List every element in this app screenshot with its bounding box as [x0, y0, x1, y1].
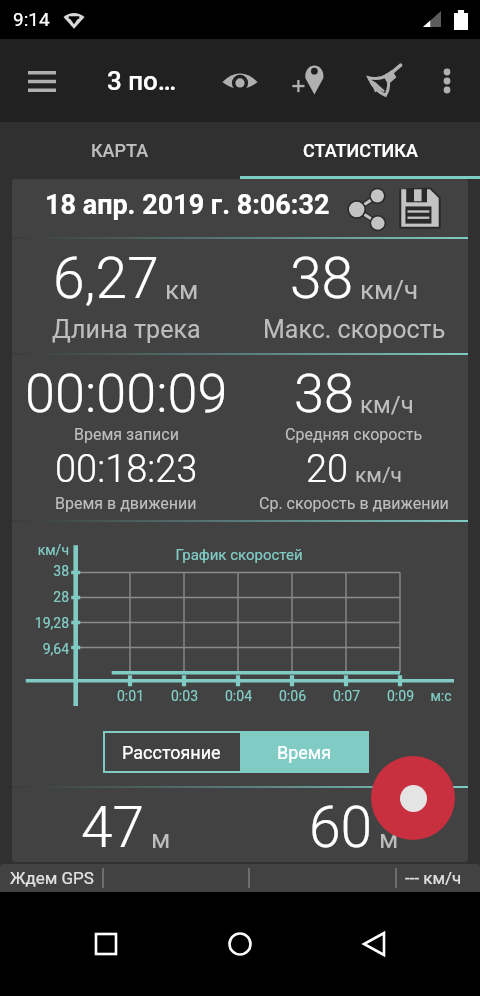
staticText: 9,64: [42, 641, 69, 657]
button[interactable]: Home: [212, 916, 268, 972]
staticText: 3 по…: [107, 66, 177, 96]
staticText: 60: [309, 794, 373, 861]
button[interactable]: Расстояние: [103, 731, 240, 773]
staticText: 18 апр. 2019 г. 8:06:32: [45, 189, 330, 221]
staticText: --- км/ч: [405, 868, 462, 888]
staticText: Время записи: [74, 425, 179, 444]
staticText: 0:04: [225, 688, 252, 704]
staticText: 47: [81, 794, 145, 861]
staticText: Средняя скорость: [285, 425, 423, 444]
staticText: 9:14: [13, 8, 50, 30]
staticText: 38: [290, 245, 354, 312]
button[interactable]: Show track: [212, 53, 268, 109]
staticText: Макс. скорость: [263, 315, 446, 344]
staticText: СТАТИСТИКА: [303, 140, 418, 161]
staticText: Длина трека: [52, 315, 201, 344]
staticText: км/ч: [37, 542, 69, 558]
button[interactable]: Start recording: [371, 756, 455, 840]
staticText: Время: [277, 742, 332, 763]
staticText: 20: [306, 447, 349, 492]
staticText: Ср. скорость в движении: [259, 494, 449, 513]
staticText: КАРТА: [91, 140, 149, 161]
button[interactable]: СТАТИСТИКА: [240, 122, 480, 179]
staticText: 0:01: [117, 688, 144, 704]
staticText: км/ч: [360, 391, 414, 419]
button[interactable]: КАРТА: [0, 122, 240, 179]
button[interactable]: Share: [343, 185, 391, 233]
staticText: 6,27: [53, 245, 159, 312]
button[interactable]: More options: [423, 57, 471, 105]
staticText: 0:03: [171, 688, 198, 704]
staticText: Расстояние: [122, 742, 221, 763]
staticText: Ждем GPS: [10, 868, 94, 888]
button[interactable]: Clear track: [355, 53, 411, 109]
staticText: км/ч: [360, 275, 419, 305]
staticText: 0:06: [279, 688, 306, 704]
staticText: м: [151, 824, 171, 854]
staticText: км: [165, 275, 199, 305]
button[interactable]: Back: [346, 916, 402, 972]
staticText: 0:09: [387, 688, 414, 704]
button[interactable]: Add marker: [283, 53, 339, 109]
button[interactable]: Recents: [78, 916, 134, 972]
staticText: 00:18:23: [55, 447, 198, 492]
staticText: м:с: [430, 688, 452, 704]
staticText: 19,28: [34, 615, 69, 631]
staticText: 28: [53, 589, 69, 605]
staticText: км/ч: [355, 463, 403, 488]
button[interactable]: Время: [240, 731, 369, 773]
staticText: 0:07: [333, 688, 360, 704]
staticText: 00:00:09: [25, 362, 228, 425]
button[interactable]: Save: [394, 182, 446, 234]
staticText: 38: [53, 563, 69, 579]
staticText: График скоростей: [175, 546, 303, 564]
staticText: Время в движении: [55, 494, 197, 513]
staticText: м: [379, 824, 399, 854]
button[interactable]: Menu: [14, 53, 70, 109]
staticText: 38: [294, 362, 354, 425]
